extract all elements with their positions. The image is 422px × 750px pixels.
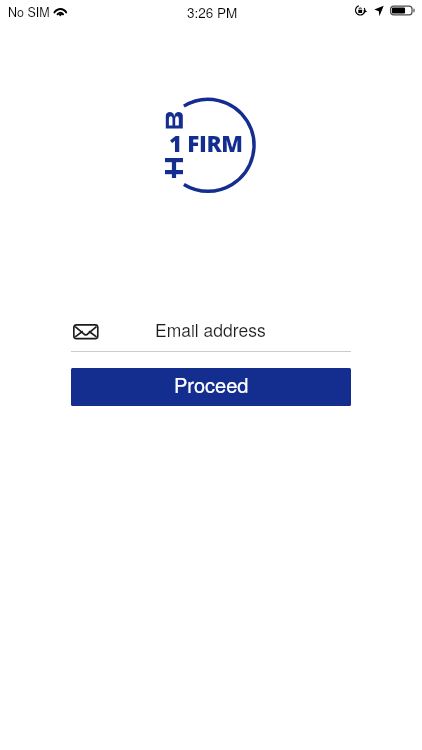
staticText: Email address: [155, 317, 266, 342]
staticText: 1 FIRM: [169, 128, 243, 159]
button[interactable]: Proceed: [71, 368, 351, 406]
button[interactable]: Email: [71, 314, 351, 352]
other: Rotation lock: [355, 4, 368, 17]
staticText: No SIM: [8, 3, 50, 21]
other: Email: [73, 324, 99, 340]
staticText: Proceed: [174, 370, 249, 399]
staticText: 3:26 PM: [187, 3, 238, 22]
other: Location: [373, 4, 384, 17]
